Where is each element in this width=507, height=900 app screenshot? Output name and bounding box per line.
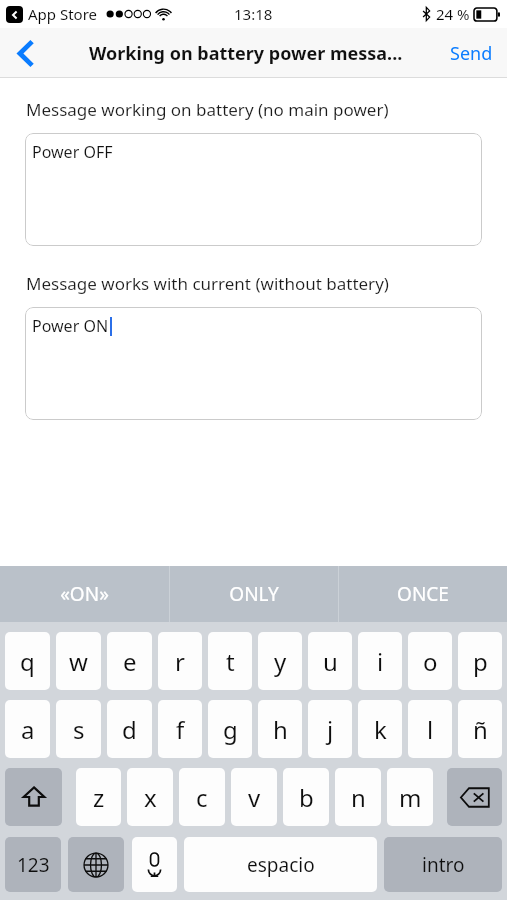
staticText: «ON» [60, 581, 109, 607]
button[interactable]: Send [450, 28, 493, 78]
button[interactable]: ONLY [170, 566, 338, 622]
staticText: a [21, 713, 35, 746]
button[interactable]: c [179, 768, 225, 826]
button[interactable]: u [308, 632, 352, 690]
button[interactable]: ONCE [339, 566, 507, 622]
button[interactable]: Shift [5, 768, 62, 826]
button[interactable]: i [358, 632, 402, 690]
staticText: s [73, 713, 85, 746]
staticText: m [399, 781, 422, 814]
staticText: intro [422, 852, 465, 878]
button[interactable]: «ON» [0, 566, 169, 622]
button[interactable]: ñ [458, 700, 502, 758]
staticText: r [175, 645, 185, 678]
staticText: k [374, 713, 387, 746]
button[interactable]: b [283, 768, 329, 826]
button[interactable]: Back [0, 28, 52, 78]
button[interactable]: y [258, 632, 302, 690]
button[interactable]: z [76, 768, 121, 826]
button[interactable]: intro [384, 837, 502, 892]
button[interactable]: q [5, 632, 50, 690]
button[interactable]: m [387, 768, 433, 826]
button[interactable]: s [56, 700, 101, 758]
button[interactable]: o [408, 632, 452, 690]
staticText: t [226, 645, 235, 678]
staticText: j [327, 713, 334, 746]
button[interactable]: p [458, 632, 502, 690]
button[interactable]: h [258, 700, 302, 758]
button[interactable]: x [127, 768, 173, 826]
button[interactable]: k [358, 700, 402, 758]
button[interactable]: Dictate [132, 837, 177, 892]
staticText: o [423, 645, 438, 678]
button[interactable]: w [56, 632, 101, 690]
staticText: e [123, 645, 137, 678]
staticText: 13:18 [234, 4, 273, 24]
button[interactable]: Power ON [25, 307, 482, 420]
staticText: u [323, 645, 338, 678]
staticText: 123 [17, 852, 50, 878]
staticText: espacio [247, 852, 315, 878]
staticText: App Store [28, 4, 98, 24]
staticText: d [122, 713, 137, 746]
button[interactable]: l [408, 700, 452, 758]
staticText: Message working on battery (no main powe… [26, 98, 389, 121]
staticText: v [248, 781, 261, 814]
staticText: ñ [473, 713, 488, 746]
staticText: f [176, 713, 185, 746]
staticText: ONLY [229, 581, 279, 607]
staticText: i [377, 645, 384, 678]
staticText: 24 % [436, 4, 470, 24]
button[interactable]: Backspace [447, 768, 502, 826]
button[interactable]: Back to App Store [6, 6, 23, 23]
staticText: p [473, 645, 488, 678]
button[interactable]: e [107, 632, 152, 690]
button[interactable]: espacio [184, 837, 377, 892]
button[interactable]: j [308, 700, 352, 758]
button[interactable]: n [335, 768, 381, 826]
button[interactable]: f [158, 700, 202, 758]
staticText: y [274, 645, 287, 678]
button[interactable]: t [208, 632, 252, 690]
staticText: Send [450, 41, 493, 66]
staticText: b [299, 781, 314, 814]
staticText: h [273, 713, 288, 746]
staticText: c [196, 781, 208, 814]
staticText: ONCE [397, 581, 449, 607]
button[interactable]: a [5, 700, 50, 758]
button[interactable]: Change keyboard language [68, 837, 124, 892]
staticText: Message works with current (without batt… [26, 272, 389, 295]
staticText: w [69, 645, 88, 678]
staticText: g [223, 713, 238, 746]
staticText: n [351, 781, 366, 814]
staticText: Power ON [32, 315, 109, 337]
staticText: q [20, 645, 35, 678]
staticText: z [93, 781, 105, 814]
button[interactable]: Power OFF [25, 133, 482, 246]
staticText: Working on battery power messa... [89, 41, 403, 66]
staticText: l [427, 713, 434, 746]
button[interactable]: d [107, 700, 152, 758]
staticText: Power OFF [32, 141, 113, 163]
staticText: x [144, 781, 157, 814]
button[interactable]: 123 [5, 837, 61, 892]
button[interactable]: g [208, 700, 252, 758]
button[interactable]: v [231, 768, 277, 826]
button[interactable]: r [158, 632, 202, 690]
